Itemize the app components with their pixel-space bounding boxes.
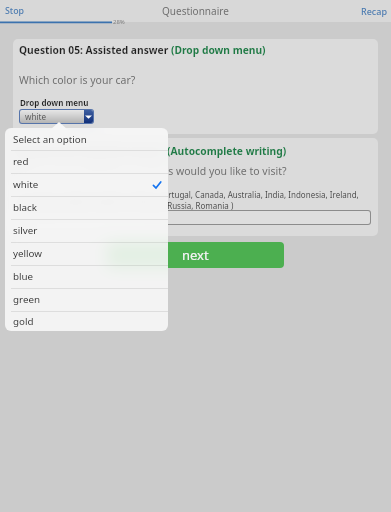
other: Selected [153,181,161,189]
staticText: white [25,111,47,122]
staticText: yellow [13,247,43,260]
button[interactable] [21,211,370,224]
button[interactable]: Stop [0,2,33,20]
button[interactable]: next [107,242,284,268]
staticText: gold [13,315,34,328]
staticText: Questionnaire [162,4,229,18]
staticText: (Drop down menu) [171,43,266,57]
button[interactable]: green [5,288,168,311]
button[interactable]: Recap [353,2,391,20]
staticText: (Autocomplete writing) [167,144,287,158]
staticText: Stop [5,5,25,17]
button[interactable]: black [5,196,168,219]
staticText: green [13,293,40,306]
staticText: Which color is your car? [19,73,136,87]
button[interactable]: silver [5,219,168,242]
staticText: white [13,178,39,191]
staticText: Recap [361,5,388,17]
button[interactable]: gold [5,311,168,331]
staticText: white [25,111,47,122]
staticText: Question 05: Assisted answer [19,43,171,57]
staticText: (Autocomplete writing) [167,144,287,158]
staticText: Which of the following countries would y… [14,164,287,178]
staticText: black [13,201,37,214]
staticText: 28% [113,18,125,26]
button[interactable]: Recap [353,2,391,20]
staticText: next [182,246,209,264]
staticText: Select an option [13,133,87,146]
staticText: ( eg: France, Germany, Spain, Greece, Po… [17,189,359,200]
staticText: Italy, Japan, Mexico, Morocco, Norway, R… [17,200,234,211]
staticText: 28% [113,18,125,26]
staticText: next [182,246,209,264]
staticText: Recap [361,5,388,17]
button[interactable]: Stop [0,2,33,20]
staticText: (Drop down menu) [171,43,266,57]
staticText: Question 06: Assisted answer [15,144,167,158]
staticText: Which color is your car? [19,73,136,87]
button[interactable]: white [20,110,93,123]
staticText: Drop down menu [20,97,89,108]
button[interactable] [21,211,370,224]
staticText: Question 06: Assisted answer [15,144,167,158]
button[interactable]: white [20,110,93,123]
button[interactable]: blue [5,265,168,288]
staticText: Questionnaire [162,4,229,18]
staticText: red [13,155,29,168]
staticText: Drop down menu [20,97,89,108]
other: Open drop down [84,110,93,123]
staticText: silver [13,224,38,237]
staticText: ( eg: France, Germany, Spain, Greece, Po… [17,189,359,200]
button[interactable]: yellow [5,242,168,265]
staticText: Stop [5,5,25,17]
other: Open drop down [84,110,93,123]
staticText: Italy, Japan, Mexico, Morocco, Norway, R… [17,200,234,211]
staticText: blue [13,270,34,283]
staticText: Which of the following countries would y… [14,164,287,178]
button[interactable]: red [5,150,168,173]
button[interactable]: next [107,242,284,268]
button[interactable]: white [5,173,168,196]
staticText: Question 05: Assisted answer [19,43,171,57]
